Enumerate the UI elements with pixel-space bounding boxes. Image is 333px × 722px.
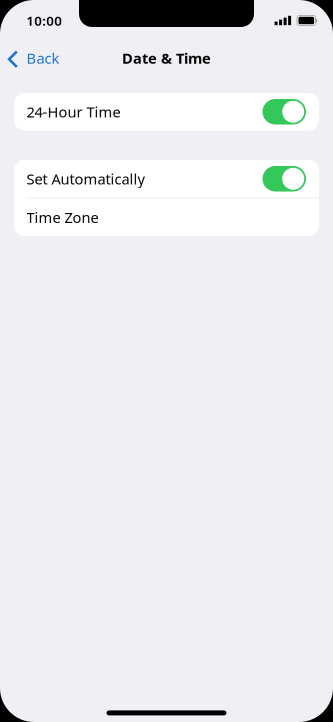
staticText: Back (26, 48, 59, 68)
button[interactable]: Back (0, 41, 69, 75)
staticText: Time Zone (26, 207, 98, 227)
staticText: Set Automatically (26, 169, 144, 188)
staticText: Date & Time (122, 48, 211, 68)
staticText: 24-Hour Time (26, 102, 120, 121)
staticText: 10:00 (26, 12, 62, 29)
button[interactable]: Set Automatically (14, 160, 319, 197)
button[interactable]: 24-Hour Time (14, 93, 319, 130)
button[interactable]: Time Zone (14, 198, 319, 236)
